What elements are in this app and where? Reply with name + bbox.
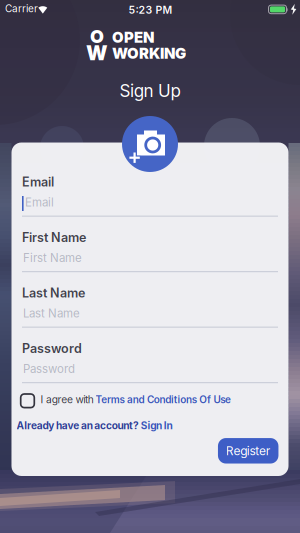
staticText: First Name: [23, 251, 82, 264]
staticText: Sign In: [141, 419, 172, 431]
staticText: O: [90, 26, 104, 47]
staticText: Carrier: [5, 3, 38, 15]
staticText: I agree with: [40, 393, 95, 406]
staticText: WORKING: [112, 44, 186, 62]
staticText: OPEN: [112, 28, 154, 46]
staticText: Terms and Conditions Of Use: [95, 394, 231, 406]
staticText: Password: [23, 362, 75, 375]
button[interactable]: Last Name text field: [22, 304, 278, 328]
button[interactable]: Add profile photo: [122, 116, 178, 172]
staticText: Last Name: [23, 306, 80, 320]
button[interactable]: Password text field: [22, 360, 278, 384]
button[interactable]: Sign In: [16, 419, 172, 431]
button[interactable]: Register: [218, 438, 278, 464]
staticText: Sign Up: [119, 81, 181, 101]
staticText: 5:23 PM: [128, 4, 172, 16]
button[interactable]: First Name text field: [22, 249, 278, 273]
staticText: First Name: [22, 230, 86, 245]
staticText: Register: [226, 444, 271, 458]
staticText: Email: [25, 195, 54, 209]
button[interactable]: I agree with Terms and Conditions Of Use: [21, 394, 227, 408]
staticText: Email: [22, 174, 54, 189]
staticText: W: [86, 41, 108, 65]
staticText: Already have an account?: [16, 419, 141, 431]
staticText: Last Name: [22, 285, 85, 300]
staticText: Password: [22, 341, 82, 356]
button[interactable]: Email text field: [22, 193, 278, 217]
